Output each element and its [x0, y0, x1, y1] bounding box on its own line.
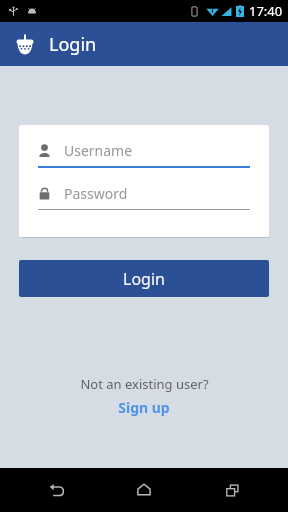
- staticText: Login: [49, 32, 97, 57]
- staticText: Password: [64, 184, 128, 203]
- button[interactable]: Home: [112, 468, 176, 512]
- staticText: Login: [123, 268, 165, 290]
- button[interactable]: Login: [19, 260, 269, 297]
- button[interactable]: Back: [24, 468, 88, 512]
- button[interactable]: Password: [38, 180, 250, 210]
- staticText: Sign up: [118, 398, 170, 417]
- staticText: Username: [64, 141, 133, 160]
- button[interactable]: Username: [38, 137, 250, 168]
- button[interactable]: Recent apps: [200, 468, 264, 512]
- button[interactable]: Sign up: [112, 396, 176, 419]
- staticText: Not an existing user?: [80, 375, 209, 393]
- staticText: 17:40: [249, 2, 283, 20]
- other: App logo: [14, 33, 36, 55]
